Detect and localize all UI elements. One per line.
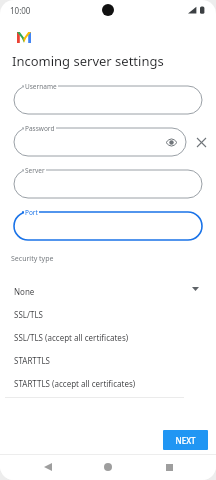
staticText: STARTTLS xyxy=(14,355,51,366)
button[interactable]: Security type dropdown xyxy=(188,282,202,296)
button[interactable] xyxy=(14,212,202,240)
button[interactable]: Home xyxy=(95,454,121,480)
staticText: Password xyxy=(25,124,55,133)
staticText: None xyxy=(14,286,35,297)
button[interactable]: STARTTLS (accept all certificates) xyxy=(5,372,184,395)
button[interactable] xyxy=(14,86,202,114)
button[interactable]: SSL/TLS (accept all certificates) xyxy=(5,326,184,349)
button[interactable]: STARTTLS xyxy=(5,349,184,372)
staticText: SSL/TLS xyxy=(14,309,43,320)
button[interactable]: Clear password xyxy=(192,133,210,151)
button[interactable]: NEXT xyxy=(163,430,208,450)
staticText: Username xyxy=(25,82,57,91)
staticText: Security type xyxy=(11,254,54,264)
staticText: Port xyxy=(25,208,38,217)
button[interactable]: Recents xyxy=(156,454,182,480)
staticText: Incoming server settings xyxy=(12,52,164,70)
staticText: STARTTLS (accept all certificates) xyxy=(14,378,136,389)
button[interactable]: Back xyxy=(35,454,61,480)
button[interactable]: Show password xyxy=(14,128,186,156)
staticText: SSL/TLS (accept all certificates) xyxy=(14,332,129,343)
button[interactable] xyxy=(14,170,202,198)
staticText: NEXT xyxy=(175,435,196,446)
button[interactable]: Show password xyxy=(162,133,180,151)
button[interactable]: SSL/TLS xyxy=(5,303,184,326)
staticText: 10:00 xyxy=(10,5,31,16)
button[interactable]: None xyxy=(5,280,184,303)
staticText: Server xyxy=(25,166,45,175)
